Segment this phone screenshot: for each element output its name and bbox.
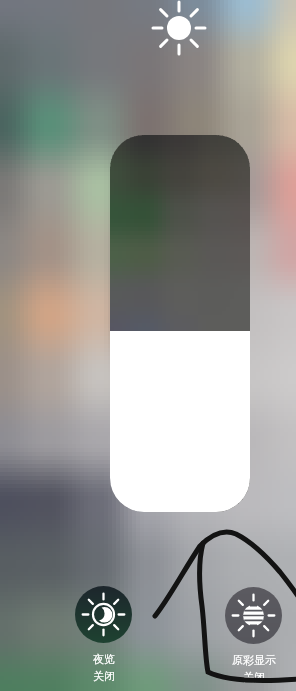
button[interactable]: Night Shift [61,586,146,683]
other: Brightness [153,2,205,54]
staticText: 夜览 [93,652,115,666]
staticText: 关闭 [243,670,265,684]
button[interactable]: True Tone [211,587,296,684]
staticText: 关闭 [93,669,115,683]
staticText: 原彩显示 [232,653,276,667]
button[interactable]: Brightness slider [110,135,250,512]
